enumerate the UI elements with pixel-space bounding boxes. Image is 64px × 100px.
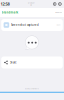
- staticText: label 12.34: [55, 12, 62, 13]
- staticText: 12:58: [1, 1, 10, 7]
- button[interactable]: Screenshot captured: [0, 19, 64, 31]
- button[interactable]: Share: [0, 56, 64, 68]
- staticText: Share: [10, 61, 17, 64]
- staticText: Open: [56, 24, 60, 26]
- staticText: Screenshot captured: [11, 23, 39, 27]
- staticText: tab: [30, 4, 32, 6]
- staticText: loading content here: [25, 88, 39, 90]
- staticText: brandmark: [2, 11, 19, 14]
- staticText: browser: [28, 2, 35, 4]
